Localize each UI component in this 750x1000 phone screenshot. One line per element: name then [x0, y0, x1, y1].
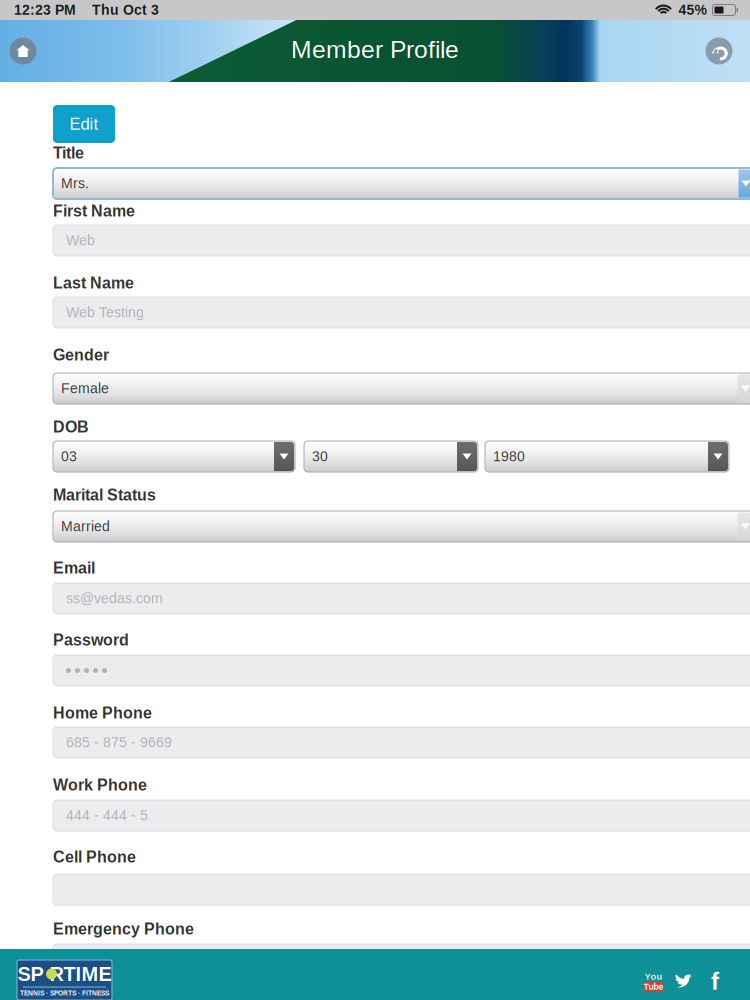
staticText: Female: [61, 381, 109, 396]
button[interactable]: Back: [697, 29, 741, 73]
staticText: f: [711, 968, 719, 995]
staticText: TENNIS · SPORTS · FITNESS: [20, 990, 109, 997]
button[interactable]: Mrs.: [53, 168, 750, 199]
staticText: First Name: [53, 202, 135, 220]
button[interactable]: Married: [53, 511, 750, 542]
staticText: 45%: [678, 2, 706, 18]
button[interactable]: Edit: [53, 105, 115, 143]
staticText: 03: [61, 449, 77, 464]
staticText: 1980: [493, 449, 525, 464]
staticText: Email: [53, 559, 95, 577]
staticText: 444 - 444 - 5: [66, 808, 148, 823]
staticText: 12:23 PM: [14, 2, 76, 18]
staticText: ss@vedas.com: [66, 591, 163, 606]
button[interactable]: 03: [53, 441, 295, 472]
button[interactable]: Female: [53, 373, 750, 404]
button[interactable]: 1980: [485, 441, 729, 472]
staticText: Title: [53, 144, 84, 162]
button[interactable]: Twitter: [664, 969, 702, 993]
staticText: DOB: [53, 418, 89, 436]
staticText: Cell Phone: [53, 848, 136, 866]
staticText: SP RTIME: [17, 963, 111, 985]
button[interactable]: Home: [1, 29, 45, 73]
staticText: Married: [61, 519, 110, 534]
staticText: 30: [312, 449, 328, 464]
staticText: Home Phone: [53, 704, 152, 722]
staticText: 685 - 875 - 9669: [66, 735, 172, 750]
staticText: Web: [66, 233, 95, 248]
staticText: Mrs.: [61, 176, 89, 191]
button[interactable]: YouTube: [643, 971, 664, 991]
staticText: Member Profile: [291, 36, 459, 63]
staticText: Tube: [643, 982, 663, 992]
staticText: Password: [53, 631, 129, 649]
staticText: Edit: [69, 115, 98, 133]
staticText: Last Name: [53, 274, 134, 292]
staticText: Thu Oct 3: [92, 2, 159, 18]
staticText: You: [644, 971, 662, 982]
staticText: Work Phone: [53, 776, 147, 794]
staticText: Web Testing: [66, 305, 144, 320]
staticText: Emergency Phone: [53, 920, 194, 938]
button[interactable]: Facebook: [702, 969, 728, 993]
staticText: Marital Status: [53, 486, 156, 504]
staticText: Gender: [53, 346, 109, 364]
button[interactable]: 30: [304, 441, 478, 472]
